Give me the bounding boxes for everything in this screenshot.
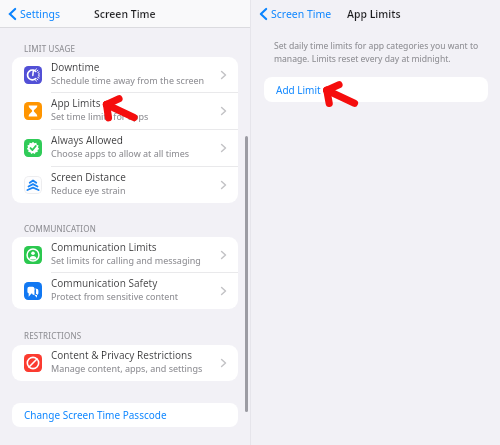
staticText: Always Allowed (51, 133, 123, 147)
staticText: Set time limits for apps (51, 110, 149, 122)
button[interactable]: Downtime (12, 57, 238, 92)
staticText: Downtime (51, 60, 100, 74)
staticText: Set limits for calling and messaging (51, 254, 201, 266)
staticText: Settings (20, 7, 60, 21)
staticText: Communication Limits (51, 240, 157, 254)
button[interactable]: Communication Safety (12, 273, 238, 309)
staticText: Content & Privacy Restrictions (51, 348, 193, 362)
button[interactable]: Always Allowed (12, 130, 238, 166)
button[interactable]: Change Screen Time Passcode (12, 403, 238, 427)
button[interactable]: Settings (9, 0, 60, 27)
staticText: Communication Safety (51, 276, 158, 290)
staticText: Screen Distance (51, 170, 126, 184)
staticText: Manage content, apps, and settings (51, 362, 203, 374)
button[interactable]: Screen Distance (12, 167, 238, 203)
button[interactable]: Add Limit (264, 77, 488, 102)
staticText: Screen Time (271, 7, 332, 21)
staticText: Protect from sensitive content (51, 290, 179, 302)
staticText: RESTRICTIONS (24, 330, 82, 341)
staticText: Screen Time (94, 7, 156, 21)
staticText: Choose apps to allow at all times (51, 147, 190, 159)
staticText: Schedule time away from the screen (51, 74, 205, 86)
staticText: App Limits (51, 96, 101, 110)
button[interactable]: Content & Privacy Restrictions (12, 345, 238, 381)
button[interactable]: App Limits (12, 93, 238, 129)
staticText: LIMIT USAGE (24, 43, 76, 54)
staticText: Set daily time limits for app categories… (274, 40, 479, 64)
staticText: Add Limit (276, 83, 321, 97)
button[interactable]: Communication Limits (12, 237, 238, 272)
staticText: Change Screen Time Passcode (24, 408, 167, 422)
staticText: Reduce eye strain (51, 184, 126, 196)
staticText: App Limits (347, 7, 401, 21)
staticText: COMMUNICATION (24, 223, 96, 234)
button[interactable]: Screen Time (260, 0, 332, 27)
